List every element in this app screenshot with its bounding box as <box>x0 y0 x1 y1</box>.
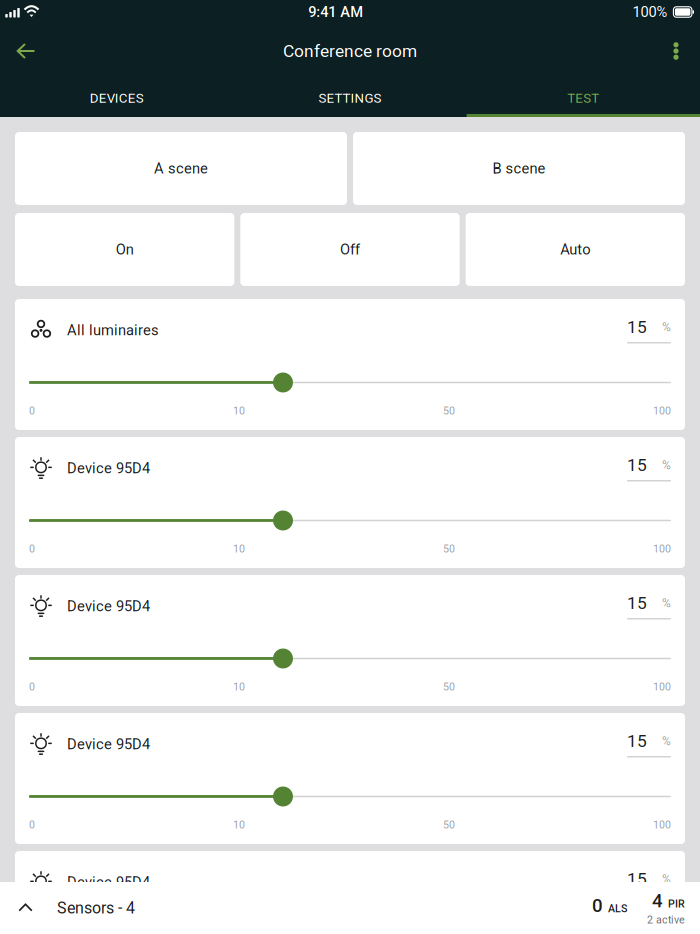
button[interactable]: More options <box>652 24 700 78</box>
staticText: 100 <box>653 404 671 417</box>
staticText: 10 <box>233 404 245 417</box>
staticText: 0 <box>29 404 35 417</box>
staticText: 15 <box>627 731 647 751</box>
button[interactable]: A scene <box>15 132 347 205</box>
staticText: Device 95D4 <box>67 874 150 891</box>
staticText: % <box>662 872 671 886</box>
button[interactable]: Auto <box>466 213 685 286</box>
staticText: 15 <box>627 869 647 889</box>
staticText: 100% <box>632 3 667 21</box>
staticText: 100 <box>653 680 671 693</box>
staticText: 50 <box>443 404 455 417</box>
staticText: All luminaires <box>67 322 159 339</box>
staticText: Auto <box>560 241 590 258</box>
staticText: 10 <box>233 818 245 831</box>
staticText: % <box>662 596 671 610</box>
staticText: 4 <box>652 890 663 912</box>
staticText: DEVICES <box>90 90 144 106</box>
staticText: Conference room <box>283 41 417 61</box>
staticText: 100 <box>653 818 671 831</box>
staticText: 0 <box>29 818 35 831</box>
staticText: % <box>662 734 671 748</box>
staticText: 0 <box>29 542 35 555</box>
staticText: TEST <box>567 90 599 106</box>
button[interactable]: On <box>15 213 234 286</box>
staticText: 15 <box>627 455 647 475</box>
staticText: Off <box>340 241 360 258</box>
staticText: Device 95D4 <box>67 460 150 477</box>
staticText: 100 <box>653 542 671 555</box>
staticText: B scene <box>492 160 545 177</box>
staticText: 0 <box>592 895 603 916</box>
button[interactable]: DEVICES <box>0 78 233 117</box>
button[interactable]: Sensors - 4 <box>0 882 700 934</box>
staticText: 50 <box>443 680 455 693</box>
staticText: 2 active <box>647 914 685 926</box>
staticText: 10 <box>233 680 245 693</box>
staticText: % <box>662 458 671 472</box>
staticText: ALS <box>608 902 627 915</box>
staticText: SETTINGS <box>318 90 381 106</box>
staticText: 0 <box>29 680 35 693</box>
staticText: 50 <box>443 818 455 831</box>
button[interactable]: TEST <box>467 78 700 117</box>
staticText: 15 <box>627 593 647 613</box>
staticText: 15 <box>627 317 647 337</box>
staticText: % <box>662 320 671 334</box>
button[interactable]: SETTINGS <box>233 78 467 117</box>
button[interactable]: Back <box>0 24 52 78</box>
staticText: Device 95D4 <box>67 736 150 753</box>
staticText: On <box>116 241 134 258</box>
staticText: Device 95D4 <box>67 598 150 615</box>
staticText: PIR <box>668 898 685 910</box>
staticText: Sensors - 4 <box>57 899 135 917</box>
staticText: 10 <box>233 542 245 555</box>
button[interactable]: B scene <box>353 132 685 205</box>
staticText: A scene <box>154 160 208 177</box>
button[interactable]: Off <box>240 213 460 286</box>
staticText: 9:41 AM <box>308 3 363 21</box>
staticText: 50 <box>443 542 455 555</box>
